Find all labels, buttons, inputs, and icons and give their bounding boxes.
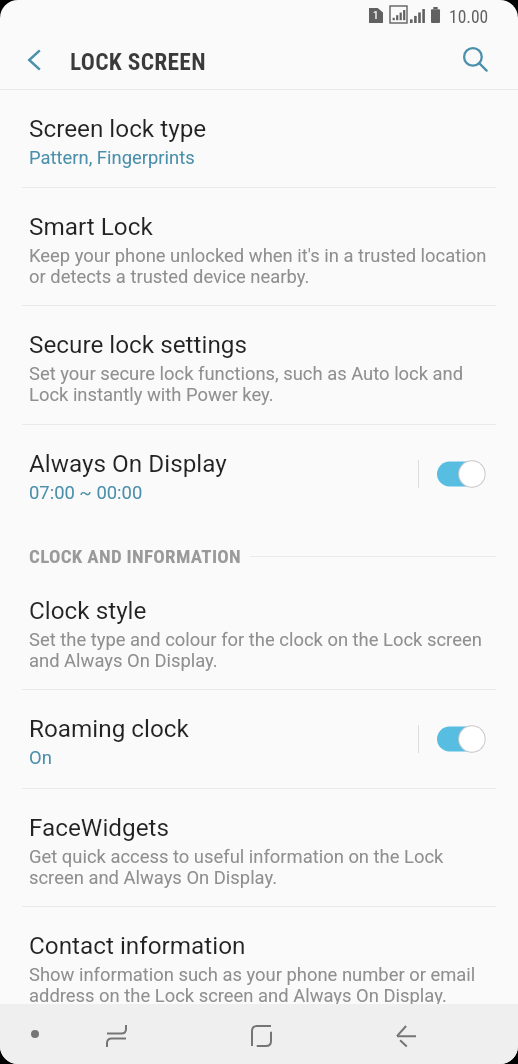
staticText: Always On Display bbox=[29, 449, 227, 477]
staticText: Show information such as your phone numb… bbox=[29, 964, 476, 1006]
staticText: Keep your phone unlocked when it's in a … bbox=[29, 245, 487, 287]
staticText: Roaming clock bbox=[29, 714, 189, 742]
staticText: FaceWidgets bbox=[29, 813, 170, 841]
staticText: Set your secure lock functions, such as … bbox=[29, 363, 464, 405]
button[interactable]: Search bbox=[452, 37, 498, 83]
button[interactable]: Back bbox=[334, 1006, 479, 1064]
staticText: 07:00 ~ 00:00 bbox=[29, 482, 143, 504]
button[interactable]: Contact information bbox=[0, 907, 518, 1024]
staticText: Clock style bbox=[29, 596, 147, 624]
button[interactable]: Hide navigation bar bbox=[13, 1012, 57, 1056]
staticText: Smart Lock bbox=[29, 212, 153, 240]
button[interactable]: Screen lock type bbox=[0, 90, 518, 187]
staticText: Pattern, Fingerprints bbox=[29, 147, 195, 169]
staticText: LOCK SCREEN bbox=[70, 48, 206, 76]
staticText: 1 bbox=[373, 9, 379, 22]
staticText: Secure lock settings bbox=[29, 330, 247, 358]
button[interactable]: Navigate up bbox=[12, 37, 58, 83]
button[interactable]: Toggle Roaming clock bbox=[437, 723, 486, 755]
button[interactable]: Smart Lock bbox=[0, 188, 518, 305]
staticText: Get quick access to useful information o… bbox=[29, 846, 444, 888]
staticText: 10.00 bbox=[449, 7, 489, 28]
button[interactable]: Recent apps bbox=[43, 1006, 189, 1064]
button[interactable]: Home bbox=[189, 1006, 334, 1064]
staticText: Contact information bbox=[29, 931, 246, 959]
button[interactable]: Secure lock settings bbox=[0, 306, 518, 423]
button[interactable]: FaceWidgets bbox=[0, 789, 518, 906]
staticText: Set the type and colour for the clock on… bbox=[29, 629, 482, 671]
button[interactable]: Toggle Always On Display bbox=[437, 458, 486, 490]
button[interactable]: Clock style bbox=[0, 572, 518, 689]
button[interactable]: Roaming clock bbox=[0, 690, 418, 787]
staticText: Screen lock type bbox=[29, 114, 207, 142]
staticText: On bbox=[29, 747, 52, 769]
button[interactable]: Always On Display bbox=[0, 425, 418, 522]
staticText: CLOCK AND INFORMATION bbox=[29, 545, 242, 567]
